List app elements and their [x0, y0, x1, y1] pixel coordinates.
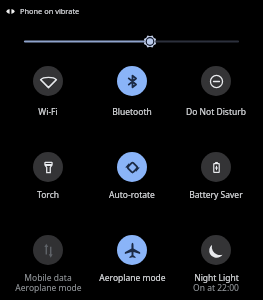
- button[interactable]: Do Not Disturb: [174, 106, 258, 118]
- button[interactable]: Torch: [33, 152, 63, 182]
- button[interactable]: Night Light: [174, 272, 258, 296]
- button[interactable]: Mobile data: [6, 272, 90, 296]
- staticText: On at 22:00: [193, 282, 239, 294]
- staticText: Do Not Disturb: [186, 106, 246, 118]
- staticText: Wi-Fi: [38, 106, 58, 118]
- button[interactable]: Bluetooth: [90, 106, 174, 118]
- button[interactable]: Auto-rotate: [90, 189, 174, 201]
- staticText: Battery Saver: [189, 189, 243, 201]
- button[interactable]: Aeroplane mode: [117, 235, 147, 265]
- button[interactable]: Mobile data: [33, 235, 63, 265]
- button[interactable]: Do Not Disturb: [201, 66, 231, 96]
- staticText: Auto-rotate: [109, 189, 155, 201]
- staticText: Aeroplane mode: [15, 282, 82, 294]
- button[interactable]: Bluetooth: [117, 66, 147, 96]
- button[interactable]: Phone on vibrate: [5, 4, 81, 18]
- staticText: Torch: [37, 189, 59, 201]
- button[interactable]: Brightness: [0, 30, 263, 52]
- staticText: Aeroplane mode: [99, 272, 166, 284]
- button[interactable]: Wi-Fi: [33, 66, 63, 96]
- button[interactable]: Night Light: [201, 235, 231, 265]
- button[interactable]: Battery Saver: [201, 152, 231, 182]
- staticText: Bluetooth: [112, 106, 152, 118]
- button[interactable]: Aeroplane mode: [90, 272, 174, 284]
- button[interactable]: Torch: [6, 189, 90, 201]
- staticText: Mobile data: [24, 272, 72, 284]
- button[interactable]: Wi-Fi: [6, 106, 90, 118]
- button[interactable]: Battery Saver: [174, 189, 258, 201]
- staticText: Night Light: [194, 272, 239, 284]
- button[interactable]: Auto-rotate: [117, 152, 147, 182]
- staticText: Phone on vibrate: [20, 6, 80, 16]
